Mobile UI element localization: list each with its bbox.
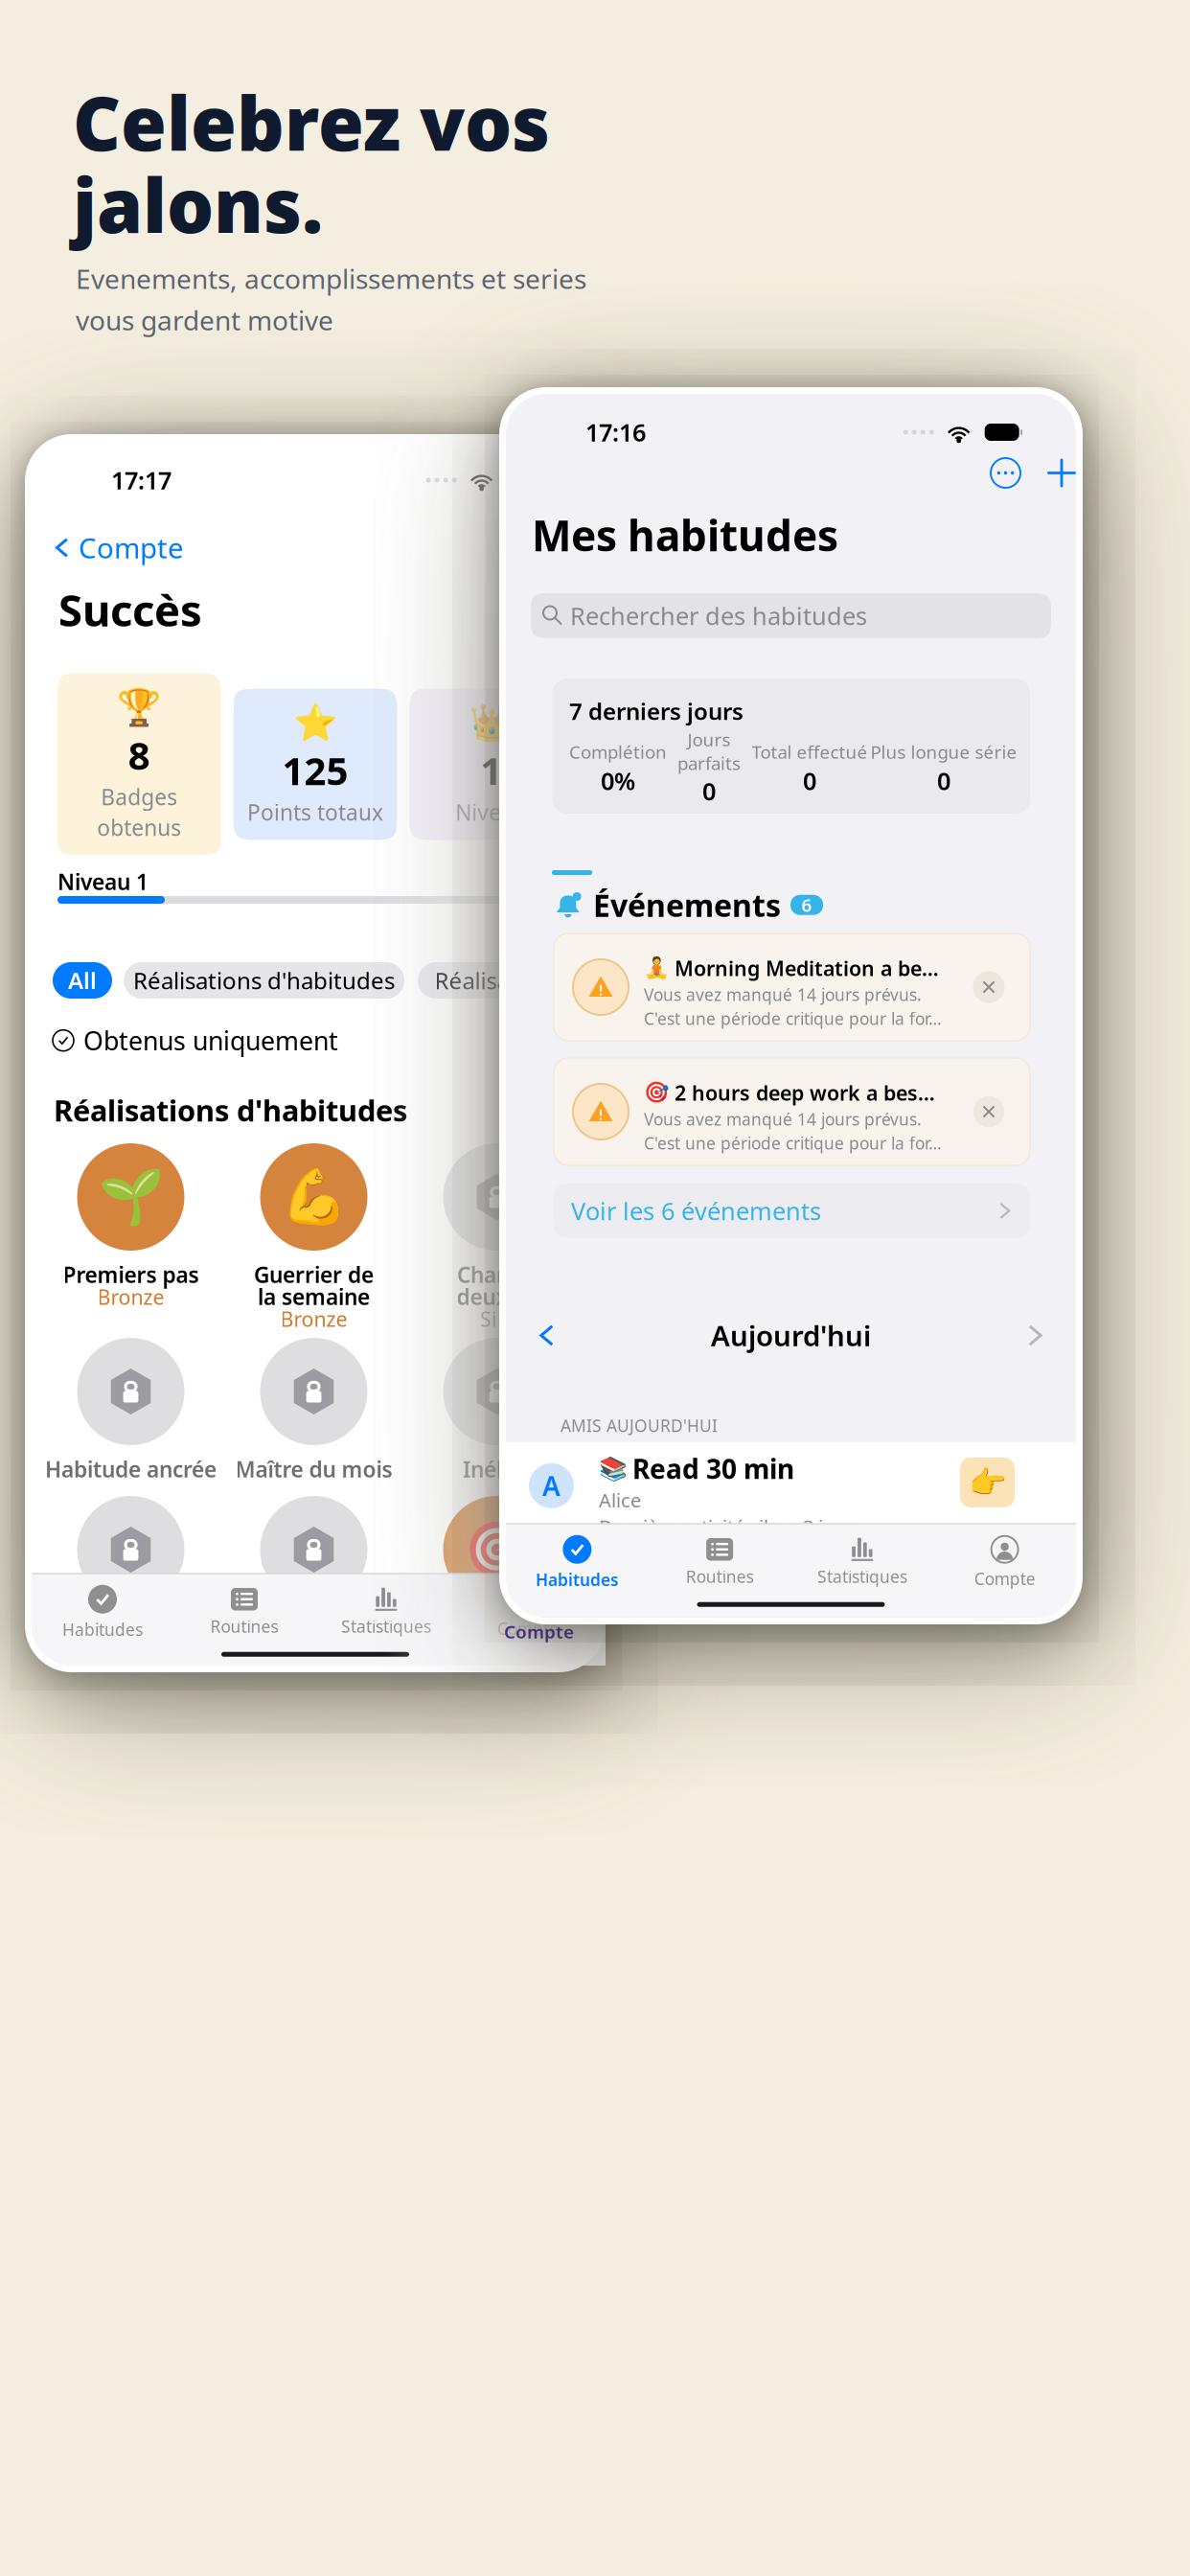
staticText: 0 (803, 765, 816, 797)
staticText: Evenements, accomplissements et series (76, 261, 586, 296)
staticText: vous gardent motive (76, 302, 333, 338)
staticText: Inébra (463, 1455, 531, 1484)
staticText: ⭐ (293, 702, 337, 743)
staticText: 🌱 (97, 1166, 164, 1228)
button[interactable]: Réalisations d'habitudes (124, 962, 404, 999)
staticText: 🏆 (117, 687, 161, 728)
staticText: Niveau 1 (57, 867, 149, 896)
staticText: Succès (58, 581, 202, 638)
button[interactable]: Compte (933, 1534, 1076, 1592)
button[interactable]: Routines (648, 1536, 791, 1589)
button[interactable]: Jour suivant (1024, 1325, 1045, 1346)
staticText: la semaine (258, 1282, 370, 1311)
staticText: Niveau (455, 798, 527, 826)
staticText: 17:17 (111, 464, 172, 496)
button[interactable]: Obtenus uniquement (53, 1023, 455, 1057)
staticText: Habitude ancrée (45, 1455, 217, 1484)
staticText: 8 (128, 729, 150, 780)
staticText: Total effectué (752, 740, 868, 764)
button[interactable]: Ajouter une habitude (1047, 459, 1076, 487)
staticText: Celebrez vos (73, 73, 550, 171)
button[interactable]: Voir les 6 événements (554, 1184, 1030, 1238)
staticText: Réalisations d (435, 965, 583, 996)
button[interactable]: Statistiques (791, 1536, 934, 1589)
staticText: 125/2 (515, 867, 573, 896)
staticText: 2 hours deep work a bes… (675, 1079, 935, 1106)
button[interactable]: Rechercher des habitudes (531, 593, 1051, 638)
staticText: Jours (687, 727, 731, 751)
staticText: C'est une période critique pour la for… (644, 1007, 942, 1030)
staticText: Mes habitudes (532, 507, 838, 563)
staticText: Habitudes (535, 1569, 619, 1591)
staticText: Dernière activité : il y a 3 jours (599, 1514, 863, 1539)
staticText: Maître du mois (235, 1455, 392, 1484)
staticText: Points totaux (247, 798, 383, 826)
staticText: Read 30 min (632, 1451, 794, 1486)
staticText: C'est une période critique pour la for… (644, 1132, 942, 1154)
staticText: Vous avez manqué 14 jours prévus. (644, 1108, 922, 1130)
button[interactable]: Fermer (964, 1087, 1014, 1137)
staticText: 17:16 (585, 416, 646, 448)
staticText: Aujourd'hui (711, 1317, 871, 1354)
staticText: 👉 (968, 1465, 1007, 1500)
staticText: Vous avez manqué 14 jours prévus. (644, 984, 922, 1006)
staticText: Événements (593, 885, 781, 925)
button[interactable]: Plus d'options (991, 458, 1020, 488)
button[interactable]: All (53, 962, 112, 999)
button[interactable]: Compte (53, 529, 184, 566)
staticText: Voir les 6 événements (571, 1195, 821, 1227)
staticText: Compte (504, 1620, 574, 1643)
staticText: Champi (457, 1260, 537, 1289)
staticText: Guerrier de (254, 1260, 374, 1289)
staticText: Morning Meditation a be… (675, 954, 939, 982)
staticText: 0 (702, 775, 716, 807)
staticText: Réalisations d'habitudes (133, 965, 395, 996)
button[interactable]: Jour précédent (537, 1325, 558, 1346)
staticText: 125 (282, 745, 348, 796)
staticText: 🧘 (644, 956, 670, 980)
staticText: 7 derniers jours (569, 696, 744, 726)
button[interactable]: Réalisations d (418, 962, 600, 999)
staticText: Bronze (280, 1305, 347, 1332)
staticText: 💪 (280, 1166, 347, 1228)
staticText: Compte (79, 529, 184, 566)
staticText: Complétion (569, 740, 667, 764)
staticText: 1 (480, 745, 502, 796)
button[interactable]: Compte (457, 1584, 599, 1641)
staticText: 0% (601, 765, 635, 797)
button[interactable]: Habitudes (32, 1583, 173, 1642)
staticText: Compte (974, 1568, 1035, 1590)
staticText: Premiers pas (63, 1260, 199, 1289)
staticText: Plus longue série (870, 740, 1017, 764)
staticText: parfaits (677, 751, 741, 775)
staticText: Habitudes (62, 1618, 143, 1640)
button[interactable]: Routines (173, 1586, 315, 1639)
staticText: 👑 (469, 702, 513, 743)
staticText: 🎯 (644, 1081, 670, 1104)
staticText: deux se (457, 1282, 537, 1311)
staticText: Silv (480, 1305, 514, 1332)
staticText: AMIS AUJOURD'HUI (561, 1414, 718, 1437)
staticText: A (542, 1468, 561, 1504)
button[interactable]: Statistiques (315, 1586, 457, 1639)
staticText: Statistiques (341, 1615, 431, 1637)
staticText: jalons. (73, 155, 323, 253)
staticText: All (68, 965, 97, 996)
button[interactable]: Habitudes (506, 1533, 648, 1592)
staticText: Obtenus uniquement (83, 1023, 338, 1057)
staticText: 🎯 (463, 1519, 530, 1580)
button[interactable]: Fermer (964, 962, 1014, 1012)
staticText: Routines (210, 1615, 278, 1637)
staticText: Alice (599, 1487, 641, 1513)
staticText: Routines (686, 1565, 754, 1587)
staticText: obtenus (97, 813, 181, 842)
staticText: Compte (497, 1617, 559, 1639)
staticText: 📚 (599, 1455, 628, 1482)
staticText: Réalisations d'habitudes (54, 1091, 407, 1130)
staticText: Bronze (97, 1283, 164, 1310)
staticText: 0 (937, 765, 950, 797)
staticText: Badges (101, 782, 178, 811)
staticText: Rechercher des habitudes (570, 600, 867, 632)
staticText: 6 (801, 893, 812, 917)
staticText: Statistiques (817, 1565, 907, 1587)
